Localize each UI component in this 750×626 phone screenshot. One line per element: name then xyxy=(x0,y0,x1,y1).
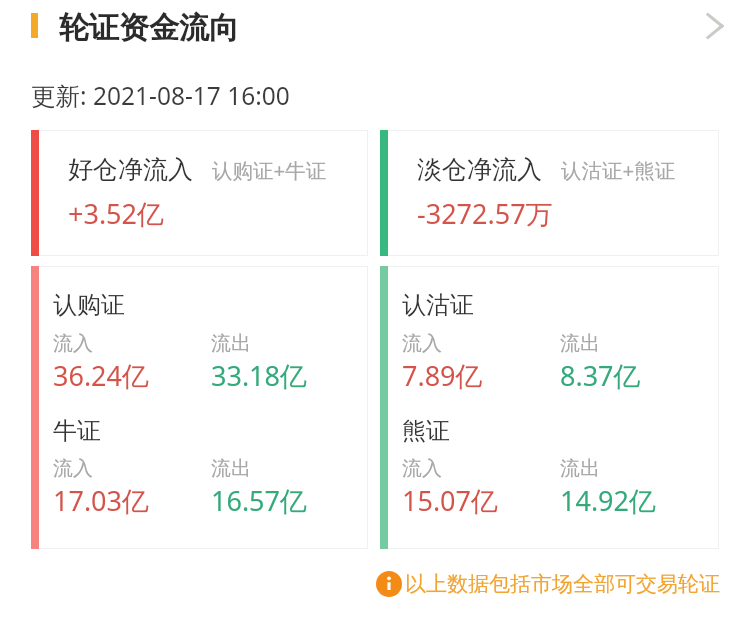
staticText: 熊证 xyxy=(402,416,450,446)
staticText: 流出 xyxy=(560,456,600,481)
staticText: 更新: 2021-08-17 16:00 xyxy=(31,79,290,112)
staticText: 14.92亿 xyxy=(560,482,657,519)
staticText: 36.24亿 xyxy=(53,357,150,394)
staticText: 流出 xyxy=(211,456,251,481)
staticText: 8.37亿 xyxy=(560,357,641,394)
staticText: 7.89亿 xyxy=(402,357,483,394)
staticText: 33.18亿 xyxy=(211,357,308,394)
staticText: 轮证资金流向 xyxy=(59,9,239,47)
button[interactable]: 认沽证 xyxy=(380,266,719,549)
staticText: -3272.57万 xyxy=(417,195,553,232)
staticText: 流出 xyxy=(560,331,600,356)
button[interactable]: 以上数据包括市场全部可交易轮证 xyxy=(375,570,720,598)
staticText: 认沽证+熊证 xyxy=(561,156,676,184)
staticText: 好仓净流入 xyxy=(68,154,193,185)
staticText: 17.03亿 xyxy=(53,482,150,519)
button[interactable]: 轮证资金流向 xyxy=(0,0,750,55)
button[interactable]: 好仓净流入 xyxy=(31,130,368,256)
staticText: 流入 xyxy=(53,331,93,356)
staticText: 牛证 xyxy=(53,416,101,446)
button[interactable]: More xyxy=(691,4,739,52)
staticText: 16.57亿 xyxy=(211,482,308,519)
staticText: 流入 xyxy=(53,456,93,481)
button[interactable]: 淡仓净流入 xyxy=(380,130,719,256)
staticText: 认购证+牛证 xyxy=(212,156,327,184)
staticText: 认沽证 xyxy=(402,290,474,320)
staticText: 以上数据包括市场全部可交易轮证 xyxy=(405,571,720,597)
staticText: 流入 xyxy=(402,456,442,481)
button[interactable]: 认购证 xyxy=(31,266,368,549)
staticText: 流出 xyxy=(211,331,251,356)
staticText: +3.52亿 xyxy=(68,195,165,232)
staticText: 淡仓净流入 xyxy=(417,154,542,185)
staticText: 15.07亿 xyxy=(402,482,499,519)
staticText: 流入 xyxy=(402,331,442,356)
staticText: 认购证 xyxy=(53,290,125,320)
